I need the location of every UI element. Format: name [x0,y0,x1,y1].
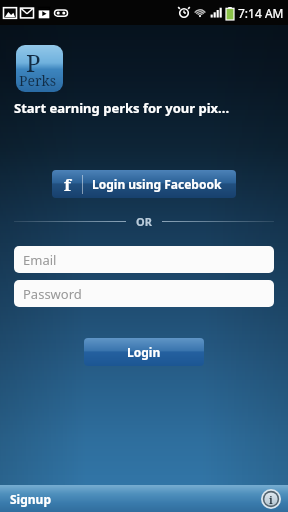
staticText: OR [136,214,152,229]
button[interactable]: Perks logo [16,45,63,92]
staticText: Password [23,285,82,303]
button[interactable]: f [52,170,236,198]
button[interactable]: Login [84,338,204,366]
button[interactable]: Signup [0,485,110,512]
button[interactable]: Info [260,488,282,510]
staticText: Perks [19,71,57,90]
staticText: Login [127,344,161,360]
button[interactable]: Password [14,280,274,307]
button[interactable]: Email [14,246,274,273]
staticText: Login using Facebook [92,176,222,192]
staticText: 7:14 AM [238,5,284,21]
staticText: i [269,492,273,507]
staticText: Email [23,251,57,269]
staticText: Start earning perks for your pix... [14,99,230,117]
staticText: f [64,173,71,196]
staticText: P [26,46,41,79]
staticText: Signup [10,491,51,507]
